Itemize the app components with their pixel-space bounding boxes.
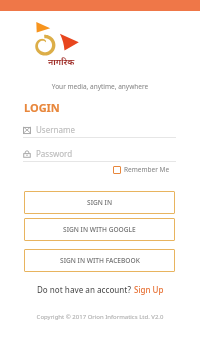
button[interactable]: SIGN IN WITH FACEBOOK — [24, 249, 175, 272]
staticText: Your media, anytime, anywhere — [0, 82, 200, 91]
button[interactable]: SIGN IN — [24, 191, 175, 214]
staticText: LOGIN — [24, 100, 60, 115]
staticText: Do not have an account? — [37, 284, 134, 295]
staticText: SIGN IN — [87, 198, 113, 207]
staticText: Remember Me — [124, 165, 170, 174]
staticText: नागरिक — [48, 56, 75, 68]
staticText: SIGN IN WITH GOOGLE — [63, 225, 136, 234]
staticText: SIGN IN WITH FACEBOOK — [60, 256, 140, 265]
button[interactable]: Sign Up — [134, 284, 164, 295]
button[interactable]: SIGN IN WITH GOOGLE — [24, 218, 175, 241]
staticText: Password — [36, 148, 73, 159]
staticText: Copyright © 2017 Orion Informatics Ltd. … — [0, 313, 200, 321]
button[interactable]: Remember Me — [113, 165, 170, 174]
staticText: Username — [36, 124, 75, 135]
